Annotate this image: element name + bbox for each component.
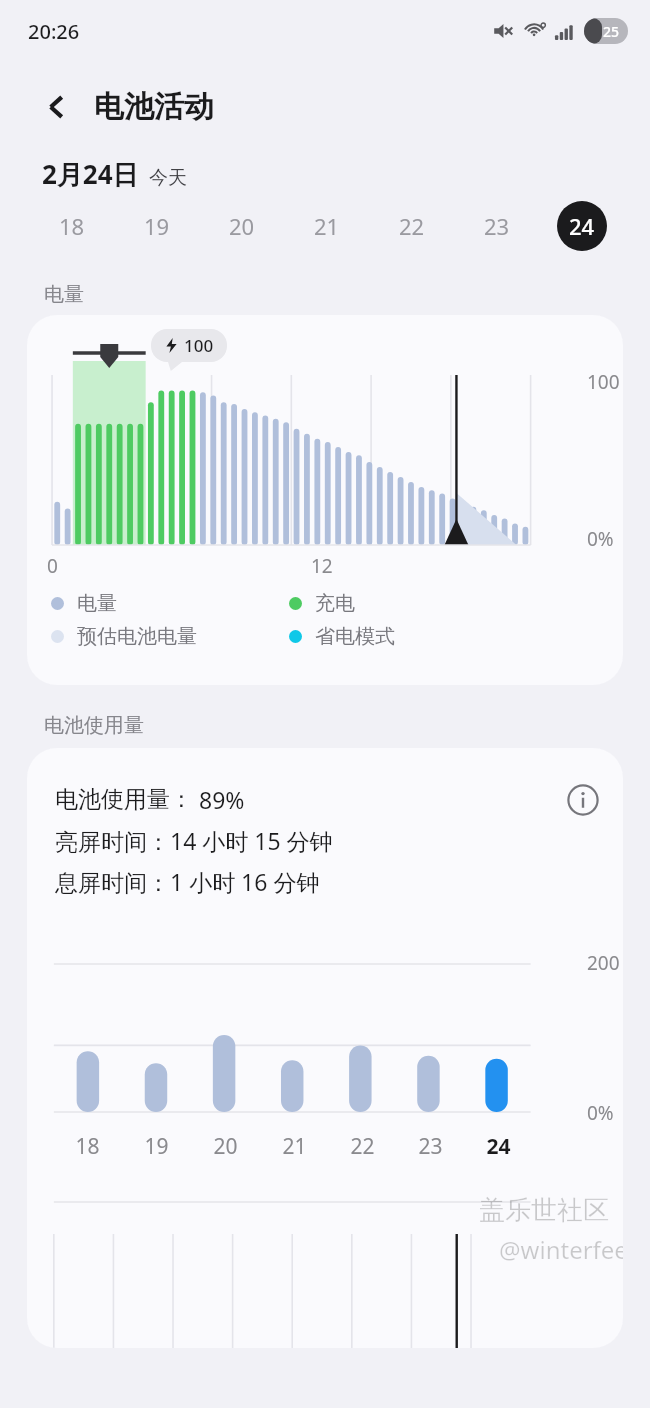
staticText: 20:26 <box>28 18 80 45</box>
staticText: 电量 <box>44 282 84 307</box>
staticText: 19 <box>144 211 170 241</box>
button[interactable]: 18 <box>30 196 114 256</box>
staticText: 亮屏时间：14 小时 15 分钟 <box>55 825 333 856</box>
staticText: 12 <box>311 553 333 579</box>
staticText: 18 <box>75 1132 100 1161</box>
staticText: 100 <box>184 334 214 357</box>
staticText: 盖乐世社区 <box>479 1194 609 1227</box>
staticText: 89% <box>199 784 245 815</box>
staticText: 电池使用量： <box>55 785 193 814</box>
staticText: 22 <box>399 211 425 241</box>
staticText: 20 <box>213 1132 238 1161</box>
staticText: 息屏时间：1 小时 16 分钟 <box>55 866 320 897</box>
staticText: 23 <box>418 1132 443 1161</box>
staticText: 200 <box>587 950 620 976</box>
button[interactable]: 21 <box>284 196 369 256</box>
staticText: 0% <box>587 1100 614 1126</box>
staticText: 电池活动 <box>94 88 214 126</box>
staticText: 18 <box>59 211 85 241</box>
staticText: 0 <box>47 553 58 579</box>
staticText: 预估电池电量 <box>77 624 197 649</box>
staticText: 24 <box>569 211 595 241</box>
staticText: 22 <box>350 1132 375 1161</box>
button[interactable]: Back <box>36 86 78 128</box>
button[interactable]: 22 <box>369 196 454 256</box>
button[interactable]: Info <box>559 776 607 824</box>
staticText: 21 <box>314 211 340 241</box>
staticText: 25 <box>603 22 620 41</box>
button[interactable]: 23 <box>454 196 539 256</box>
staticText: @winterfeel <box>499 1233 623 1266</box>
staticText: 23 <box>484 211 510 241</box>
staticText: 省电模式 <box>315 624 395 649</box>
staticText: 充电 <box>315 591 355 616</box>
button[interactable]: 电池使用量： <box>27 748 623 1348</box>
staticText: 19 <box>144 1132 169 1161</box>
staticText: 20 <box>229 211 255 241</box>
staticText: 21 <box>282 1132 307 1161</box>
staticText: 电池使用量 <box>44 713 144 738</box>
button[interactable]: 24 <box>539 196 624 256</box>
staticText: 24 <box>486 1132 511 1161</box>
staticText: 2月24日 <box>42 156 139 192</box>
button[interactable]: 100 <box>27 315 623 685</box>
button[interactable]: 20 <box>199 196 284 256</box>
staticText: 电量 <box>77 591 117 616</box>
staticText: 今天 <box>149 166 187 190</box>
button[interactable]: 19 <box>114 196 199 256</box>
staticText: 100 <box>587 369 620 395</box>
staticText: 0% <box>587 526 614 552</box>
